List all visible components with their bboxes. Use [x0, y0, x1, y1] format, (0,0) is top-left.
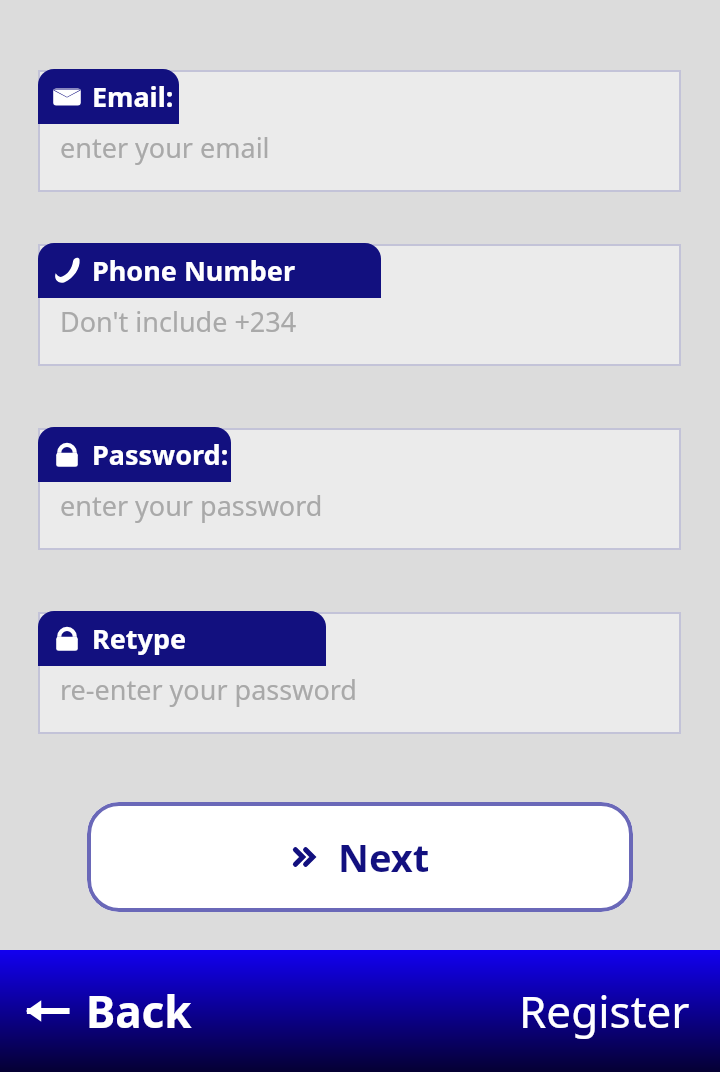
staticText: enter your password: [60, 487, 323, 524]
staticText: re-enter your password: [60, 671, 357, 708]
staticText: Don't include +234: [60, 303, 297, 340]
button[interactable]: re-enter your password: [38, 612, 681, 734]
staticText: Back: [86, 981, 192, 1041]
staticText: Next: [338, 831, 430, 883]
button[interactable]: Back: [24, 981, 192, 1041]
button[interactable]: enter your email: [38, 70, 681, 192]
staticText: Register: [519, 981, 690, 1041]
staticText: Email:: [92, 78, 174, 115]
staticText: Password:: [92, 436, 229, 473]
staticText: Retype Password:: [92, 620, 326, 657]
button[interactable]: Register: [519, 981, 690, 1041]
button[interactable]: Next: [87, 802, 633, 912]
button[interactable]: enter your password: [38, 428, 681, 550]
staticText: Phone Number (+234):: [92, 252, 381, 289]
staticText: enter your email: [60, 129, 270, 166]
button[interactable]: Don't include +234: [38, 244, 681, 366]
